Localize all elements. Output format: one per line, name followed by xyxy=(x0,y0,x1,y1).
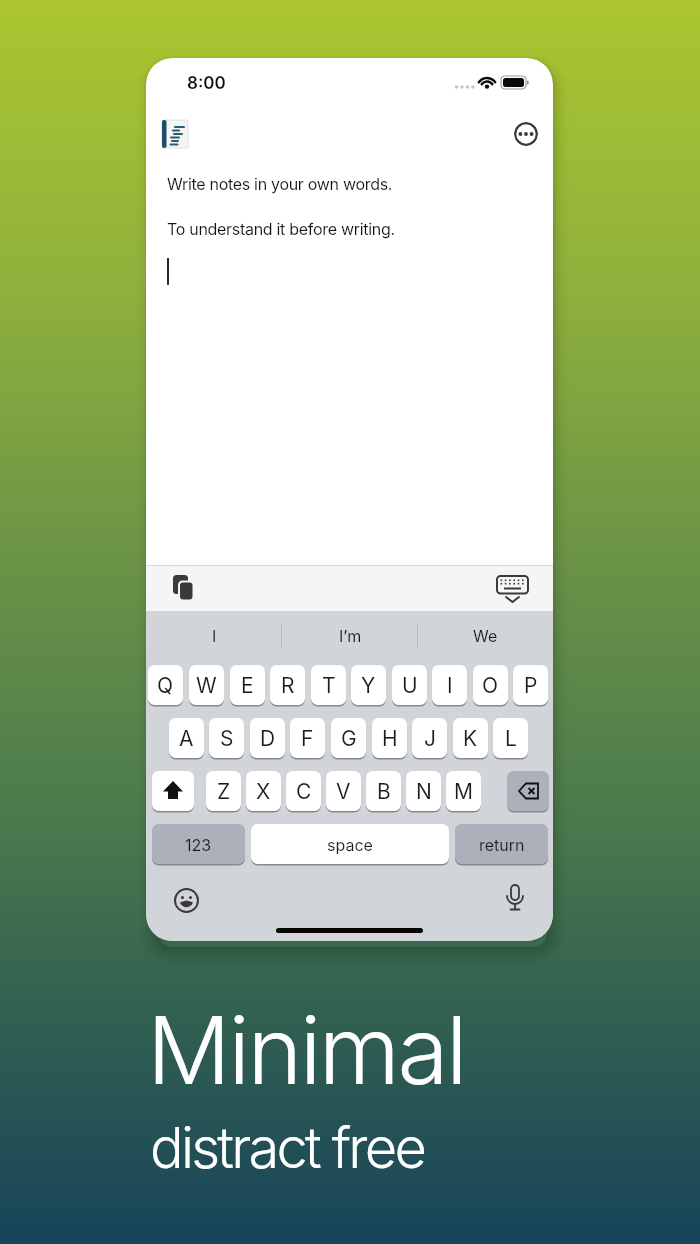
button[interactable]: F xyxy=(290,718,325,758)
staticText: 123 xyxy=(185,835,212,854)
button[interactable]: S xyxy=(209,718,244,758)
button[interactable]: H xyxy=(372,718,407,758)
button[interactable] xyxy=(162,120,188,148)
button[interactable]: B xyxy=(366,771,401,811)
staticText: B xyxy=(377,779,391,804)
button[interactable]: I xyxy=(146,611,282,660)
staticText: Write notes in your own words. xyxy=(167,174,393,193)
staticText: To understand it before writing. xyxy=(167,219,395,238)
staticText: P xyxy=(524,673,538,698)
staticText: L xyxy=(505,726,517,751)
staticText: T xyxy=(322,673,336,698)
button[interactable]: G xyxy=(331,718,366,758)
staticText: M xyxy=(454,779,473,804)
staticText: S xyxy=(220,726,234,751)
button[interactable] xyxy=(504,885,526,917)
staticText: Q xyxy=(157,673,174,698)
button[interactable]: N xyxy=(406,771,441,811)
button[interactable]: Z xyxy=(206,771,241,811)
button[interactable]: J xyxy=(412,718,447,758)
button[interactable]: I’m xyxy=(282,611,418,660)
button[interactable]: O xyxy=(473,665,508,705)
staticText: I xyxy=(447,673,453,698)
staticText: We xyxy=(473,626,498,645)
staticText: Z xyxy=(217,779,231,804)
staticText: I’m xyxy=(339,626,362,645)
staticText: Y xyxy=(361,673,376,698)
button[interactable]: E xyxy=(230,665,265,705)
button[interactable]: R xyxy=(270,665,305,705)
staticText: E xyxy=(241,673,254,698)
button[interactable] xyxy=(496,576,530,603)
button[interactable]: D xyxy=(250,718,285,758)
button[interactable]: We xyxy=(417,611,553,660)
staticText: R xyxy=(281,673,295,698)
button[interactable]: W xyxy=(189,665,224,705)
staticText: X xyxy=(256,779,271,804)
button[interactable]: 123 xyxy=(152,824,245,864)
staticText: V xyxy=(336,779,351,804)
button[interactable]: P xyxy=(513,665,548,705)
button[interactable]: space xyxy=(251,824,449,864)
button[interactable]: M xyxy=(446,771,481,811)
button[interactable]: Y xyxy=(351,665,386,705)
button[interactable]: I xyxy=(432,665,467,705)
staticText: J xyxy=(424,726,436,751)
button[interactable] xyxy=(173,887,200,914)
button[interactable]: C xyxy=(286,771,321,811)
staticText: C xyxy=(296,779,312,804)
staticText: K xyxy=(463,726,478,751)
button[interactable] xyxy=(507,771,549,811)
staticText: G xyxy=(341,726,357,751)
button[interactable] xyxy=(514,122,538,146)
staticText: H xyxy=(382,726,398,751)
staticText: W xyxy=(196,673,217,698)
staticText: N xyxy=(416,779,432,804)
staticText: F xyxy=(301,726,314,751)
button[interactable]: A xyxy=(169,718,204,758)
staticText: I xyxy=(212,626,217,645)
staticText: D xyxy=(260,726,276,751)
button[interactable]: U xyxy=(392,665,427,705)
staticText: U xyxy=(402,673,418,698)
staticText: O xyxy=(482,673,499,698)
staticText: 8:00 xyxy=(187,73,226,94)
staticText: Minimal xyxy=(147,994,466,1107)
button[interactable]: K xyxy=(453,718,488,758)
button[interactable] xyxy=(152,771,194,811)
button[interactable] xyxy=(173,575,197,602)
staticText: distract free xyxy=(150,1114,425,1182)
button[interactable]: Q xyxy=(148,665,183,705)
button[interactable]: V xyxy=(326,771,361,811)
button[interactable]: X xyxy=(246,771,281,811)
button[interactable]: T xyxy=(311,665,346,705)
staticText: A xyxy=(179,726,194,751)
staticText: space xyxy=(327,835,373,854)
button[interactable]: return xyxy=(455,824,548,864)
staticText: return xyxy=(479,835,525,854)
button[interactable]: L xyxy=(493,718,528,758)
